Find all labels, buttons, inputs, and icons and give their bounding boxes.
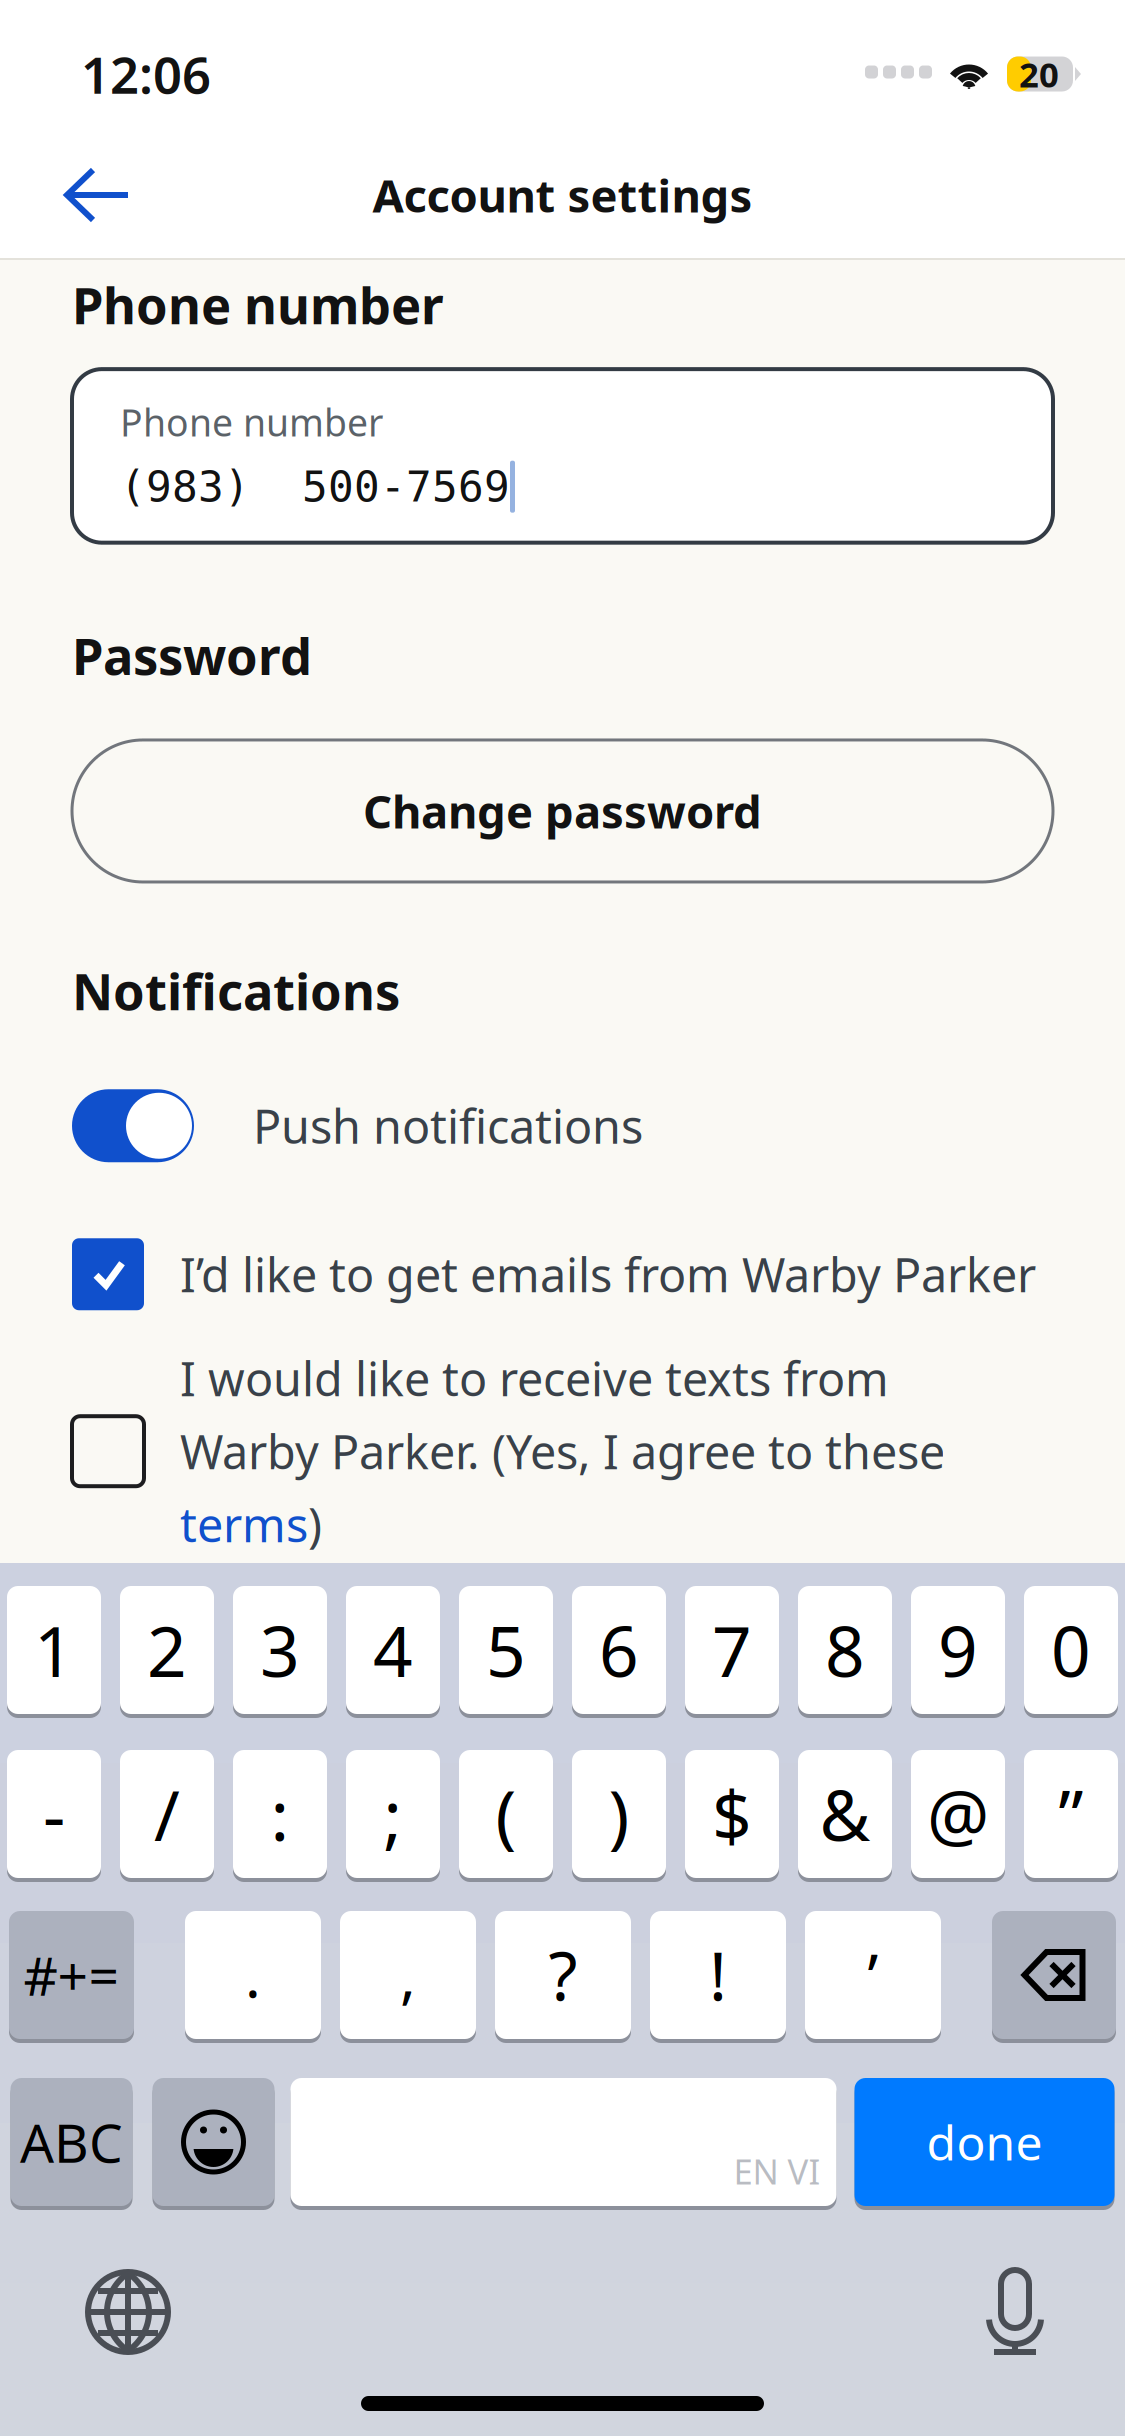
button[interactable]: #+=	[9, 1911, 134, 2043]
staticText: Password	[72, 622, 312, 689]
button[interactable]: /	[120, 1750, 214, 1882]
staticText: 8	[825, 1604, 865, 1696]
staticText: EN VI	[733, 2148, 820, 2194]
button[interactable]: ABC	[10, 2078, 132, 2210]
button[interactable]: I would like to receive texts from	[72, 1347, 1053, 1555]
button[interactable]: done	[854, 2078, 1114, 2210]
button[interactable]: Space	[290, 2078, 836, 2210]
staticText: Account settings	[372, 165, 752, 225]
button[interactable]: 8	[798, 1586, 892, 1718]
staticText: 9	[938, 1604, 978, 1696]
button[interactable]: ;	[346, 1750, 440, 1882]
button[interactable]: Dictation	[986, 2270, 1044, 2354]
staticText: 1	[34, 1604, 74, 1696]
button[interactable]: Emoji	[152, 2078, 274, 2210]
button[interactable]: ”	[1024, 1750, 1118, 1882]
staticText: (983) 500-7569	[120, 462, 510, 511]
button[interactable]: Change keyboard	[87, 2271, 169, 2353]
button[interactable]: :	[233, 1750, 327, 1882]
staticText: 7	[712, 1604, 752, 1696]
staticText: &	[819, 1768, 870, 1860]
button[interactable]: )	[572, 1750, 666, 1882]
staticText: 5	[486, 1604, 526, 1696]
staticText: )	[608, 1768, 629, 1860]
staticText: 2	[147, 1604, 187, 1696]
button[interactable]: $	[685, 1750, 779, 1882]
staticText: 0	[1051, 1604, 1091, 1696]
staticText: ABC	[20, 2107, 123, 2177]
button[interactable]: 3	[233, 1586, 327, 1718]
button[interactable]: Push notifications	[72, 1089, 1053, 1162]
button[interactable]: 2	[120, 1586, 214, 1718]
button[interactable]: 6	[572, 1586, 666, 1718]
staticText: Notifications	[72, 957, 400, 1024]
button[interactable]: 0	[1024, 1586, 1118, 1718]
staticText: Warby Parker. (Yes, I agree to these	[180, 1420, 945, 1482]
button[interactable]: ’	[805, 1911, 941, 2043]
button[interactable]: -	[7, 1750, 101, 1882]
staticText: -	[43, 1768, 65, 1860]
staticText: Push notifications	[253, 1095, 643, 1157]
button[interactable]: 4	[346, 1586, 440, 1718]
staticText: 6	[599, 1604, 639, 1696]
staticText: done	[926, 2110, 1042, 2174]
button[interactable]: (	[459, 1750, 553, 1882]
staticText: 3	[260, 1604, 300, 1696]
button[interactable]: I’d like to get emails from Warby Parker	[72, 1238, 1053, 1310]
staticText: 20	[1019, 51, 1059, 97]
button[interactable]: ?	[495, 1911, 631, 2043]
button[interactable]: Change password	[72, 740, 1053, 882]
button[interactable]: @	[911, 1750, 1005, 1882]
staticText: ”	[1058, 1768, 1083, 1860]
staticText: Phone number	[72, 271, 444, 338]
button[interactable]: &	[798, 1750, 892, 1882]
staticText: Phone number	[120, 397, 383, 447]
staticText: #+=	[23, 1940, 119, 2010]
staticText: @	[927, 1768, 989, 1860]
button[interactable]: 5	[459, 1586, 553, 1718]
staticText: Change password	[363, 781, 762, 841]
button[interactable]: 7	[685, 1586, 779, 1718]
staticText: :	[270, 1768, 289, 1860]
staticText: I’d like to get emails from Warby Parker	[180, 1243, 1036, 1305]
button[interactable]: ,	[340, 1911, 476, 2043]
button[interactable]: 1	[7, 1586, 101, 1718]
staticText: I would like to receive texts from	[180, 1347, 889, 1409]
staticText: )	[308, 1493, 322, 1555]
staticText: terms	[180, 1493, 308, 1555]
staticText: 12:06	[81, 40, 211, 108]
staticText: (	[495, 1768, 516, 1860]
staticText: .	[245, 1936, 261, 2014]
button[interactable]: Back	[34, 132, 161, 258]
staticText: ;	[383, 1768, 402, 1860]
staticText: ,	[400, 1936, 416, 2014]
button[interactable]: !	[650, 1911, 786, 2043]
staticText: ?	[548, 1931, 577, 2019]
staticText: $	[712, 1768, 752, 1860]
staticText: 4	[373, 1604, 413, 1696]
staticText: !	[709, 1931, 727, 2019]
staticText: ’	[867, 1934, 878, 2016]
staticText: /	[154, 1768, 180, 1860]
button[interactable]: Delete	[992, 1911, 1116, 2043]
button[interactable]: .	[185, 1911, 321, 2043]
button[interactable]: 9	[911, 1586, 1005, 1718]
